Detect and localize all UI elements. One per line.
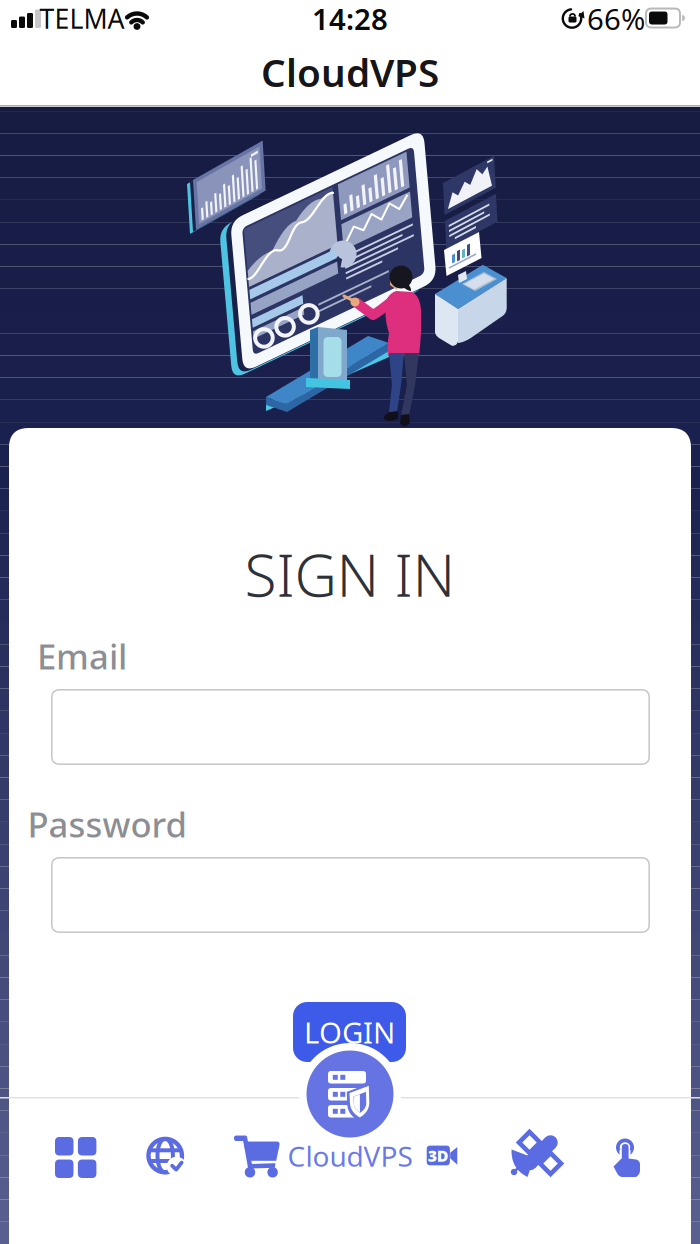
button[interactable]: Email bbox=[51, 689, 650, 765]
staticText: 14:28 bbox=[312, 0, 388, 38]
button[interactable]: Tap bbox=[609, 1134, 645, 1180]
button[interactable]: Satellite bbox=[506, 1128, 562, 1180]
button[interactable]: CloudVPS bbox=[299, 1043, 401, 1169]
staticText: TELMA bbox=[39, 1, 124, 36]
staticText: CloudVPS bbox=[287, 1137, 412, 1175]
button[interactable]: Dashboard bbox=[55, 1137, 96, 1178]
staticText: SIGN IN bbox=[244, 535, 455, 613]
staticText: LOGIN bbox=[304, 1012, 395, 1051]
button[interactable]: Store bbox=[230, 1131, 284, 1179]
staticText: 3D bbox=[428, 1145, 449, 1166]
staticText: Password bbox=[27, 801, 186, 847]
button[interactable]: Network bbox=[144, 1135, 188, 1179]
staticText: CloudVPS bbox=[261, 46, 439, 98]
staticText: Email bbox=[37, 633, 127, 679]
staticText: 66% bbox=[587, 0, 645, 38]
button[interactable]: LOGIN bbox=[293, 1002, 406, 1062]
button[interactable]: 3D bbox=[424, 1142, 460, 1169]
button[interactable]: Password bbox=[51, 857, 650, 933]
